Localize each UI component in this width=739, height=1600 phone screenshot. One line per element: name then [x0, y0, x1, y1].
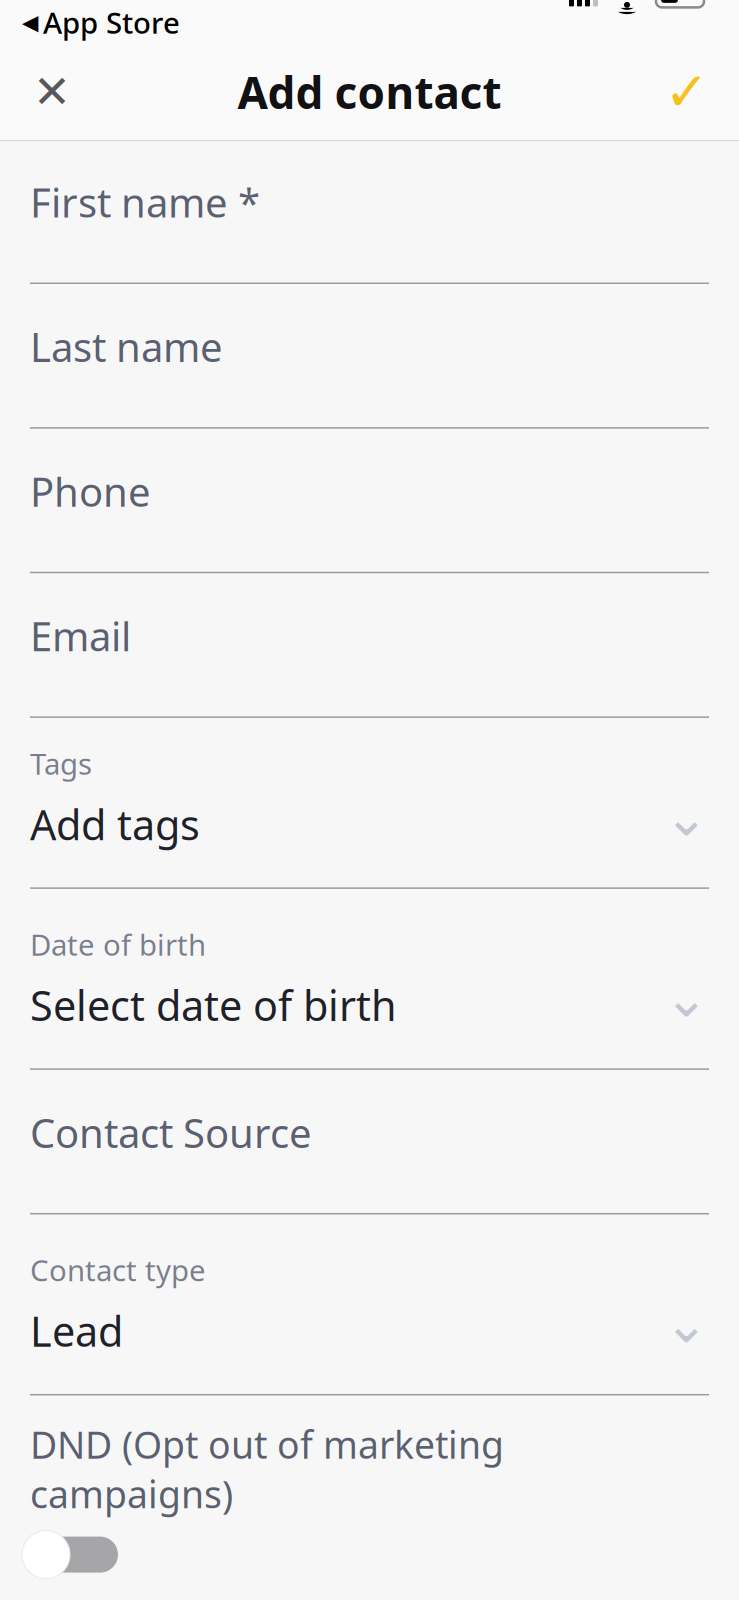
button[interactable]: Contact type [0, 1214, 739, 1395]
button[interactable]: Save contact [649, 50, 725, 134]
staticText: App Store [43, 3, 180, 42]
staticText: Contact Source [30, 1106, 312, 1159]
staticText: Lead [30, 1303, 123, 1358]
staticText: Add contact [237, 63, 501, 121]
staticText: Add tags [30, 797, 200, 851]
staticText: Select date of birth [30, 978, 397, 1032]
staticText: ✓ [664, 62, 709, 122]
staticText: ✕ [33, 66, 71, 118]
staticText: Phone [30, 465, 151, 518]
staticText: ◀ [22, 10, 38, 35]
staticText: Contact type [30, 1250, 206, 1289]
staticText: First name * [30, 175, 260, 228]
staticText: Last name [30, 320, 223, 373]
staticText: DND (Opt out of marketing campaigns) [30, 1419, 504, 1519]
staticText: Email [30, 609, 131, 662]
staticText: Tags [30, 744, 92, 783]
staticText: ⌄ [664, 1293, 709, 1354]
staticText: ⌄ [664, 968, 709, 1028]
button[interactable]: Phone [0, 429, 739, 573]
button[interactable]: Close [14, 50, 90, 134]
button[interactable]: Date of birth [0, 889, 739, 1070]
staticText: Date of birth [30, 925, 206, 964]
button[interactable]: Last name [0, 284, 739, 429]
button[interactable]: Tags [0, 718, 739, 889]
button[interactable]: Email [0, 573, 739, 718]
staticText: ⌄ [664, 787, 709, 847]
button[interactable]: Do not disturb toggle, off [0, 1525, 739, 1585]
button[interactable]: First name * [0, 141, 739, 284]
button[interactable]: Contact Source [0, 1070, 739, 1214]
